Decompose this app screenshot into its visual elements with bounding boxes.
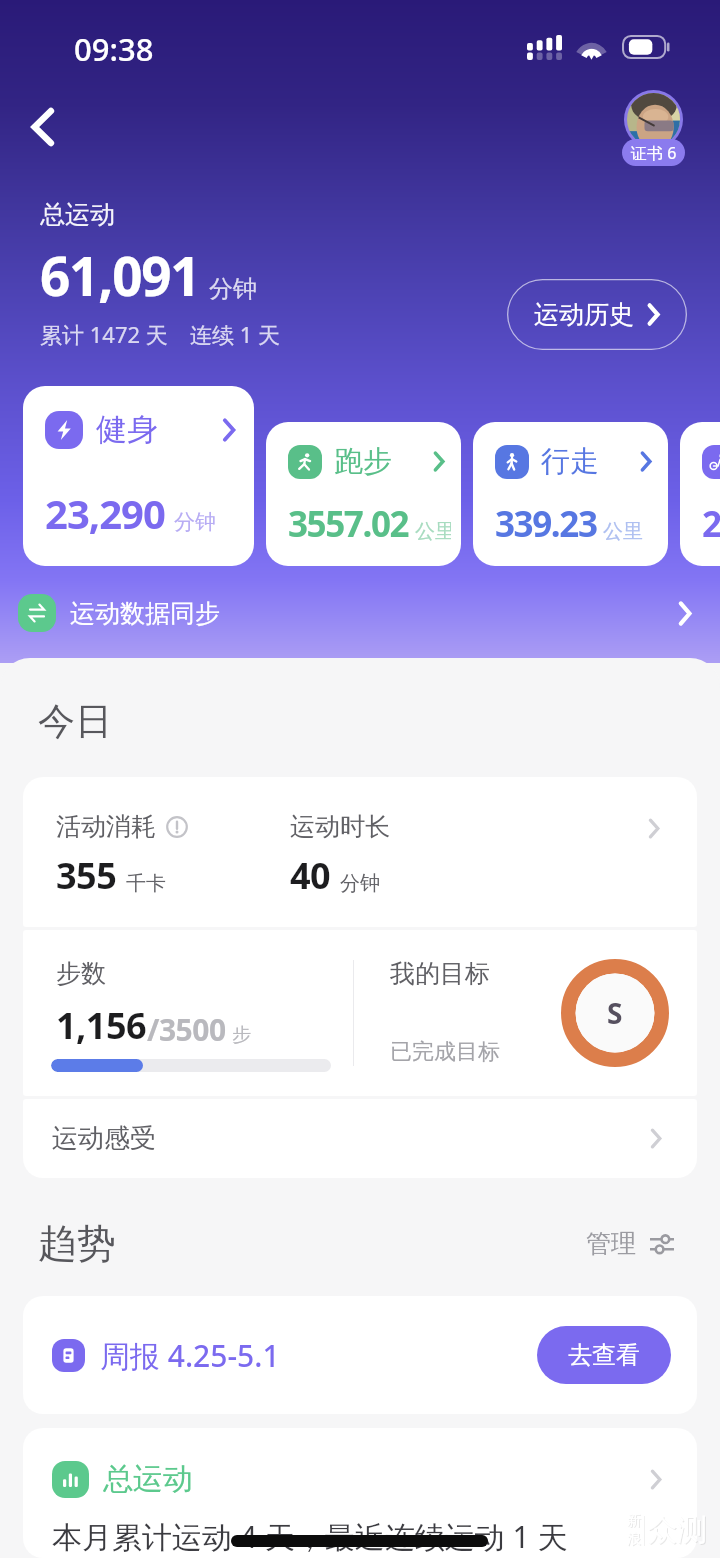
button[interactable]: Back [16, 100, 70, 154]
staticText: 周报 4.25-5.1 [100, 1335, 280, 1376]
staticText: 2 [702, 500, 720, 548]
button[interactable]: 管理 [580, 1222, 680, 1265]
staticText: 管理 [586, 1228, 636, 1259]
staticText: 浪 [627, 1530, 641, 1548]
staticText: 众测 [647, 1511, 707, 1549]
button[interactable]: 步数 [23, 930, 697, 1096]
staticText: 行走 [541, 443, 599, 480]
staticText: 1,156 [56, 1001, 147, 1050]
button[interactable]: 总运动 [23, 1428, 697, 1558]
button[interactable]: Profile and certificates [607, 90, 699, 166]
staticText: /3500 [147, 1009, 226, 1050]
button[interactable]: 运动数据同步 [0, 583, 720, 643]
button[interactable]: 周报 4.25-5.1 [23, 1296, 697, 1414]
button[interactable]: 行走 [473, 422, 668, 566]
button[interactable]: 去查看 [537, 1326, 671, 1384]
staticText: 趋势 [38, 1219, 116, 1268]
staticText: 跑步 [334, 443, 392, 480]
staticText: 分钟 [174, 509, 216, 535]
staticText: 累计 1472 天 [40, 319, 168, 349]
staticText: 分钟 [209, 274, 257, 304]
staticText: 公里 [603, 519, 643, 544]
staticText: 千卡 [126, 871, 166, 896]
staticText: 运动数据同步 [70, 598, 220, 629]
button[interactable]: 运动历史 [507, 279, 687, 350]
staticText: 活动消耗 [56, 811, 156, 842]
staticText: 步数 [56, 958, 106, 989]
staticText: 公里 [415, 519, 451, 544]
button[interactable]: 健身 [23, 386, 254, 566]
button[interactable]: 跑步 [266, 422, 461, 566]
staticText: 本月累计运动 4 天，最近连续运动 1 天 [52, 1516, 568, 1557]
staticText: 09:38 [74, 28, 154, 70]
staticText: 浪 [628, 1531, 642, 1549]
staticText: 众测 [648, 1512, 708, 1550]
staticText: 连续 1 天 [190, 319, 281, 349]
staticText: 运动感受 [52, 1122, 156, 1155]
staticText: 3557.02 [288, 500, 409, 548]
staticText: 步 [232, 1023, 251, 1047]
button[interactable]: 运动感受 [23, 1099, 697, 1178]
staticText: 40 [290, 851, 331, 900]
staticText: 运动历史 [534, 299, 634, 330]
staticText: 339.23 [495, 500, 597, 548]
staticText: 355 [56, 851, 117, 900]
staticText: 新 [628, 1513, 642, 1531]
staticText: 23,290 [45, 486, 165, 540]
staticText: 健身 [96, 410, 158, 449]
staticText: 运动时长 [290, 811, 390, 842]
staticText: 我的目标 [390, 958, 490, 989]
staticText: 61,091 [40, 239, 200, 311]
staticText: 总运动 [103, 1460, 193, 1498]
staticText: 总运动 [40, 199, 115, 230]
staticText: 证书 6 [631, 142, 677, 164]
staticText: S [607, 994, 623, 1032]
staticText: 今日 [38, 698, 112, 745]
staticText: 新 [627, 1512, 641, 1530]
button[interactable]: 活动消耗 [23, 777, 697, 927]
staticText: 去查看 [568, 1340, 640, 1370]
staticText: 分钟 [340, 871, 380, 896]
staticText: 已完成目标 [390, 1038, 500, 1066]
button[interactable]: 骑行 [680, 422, 720, 566]
